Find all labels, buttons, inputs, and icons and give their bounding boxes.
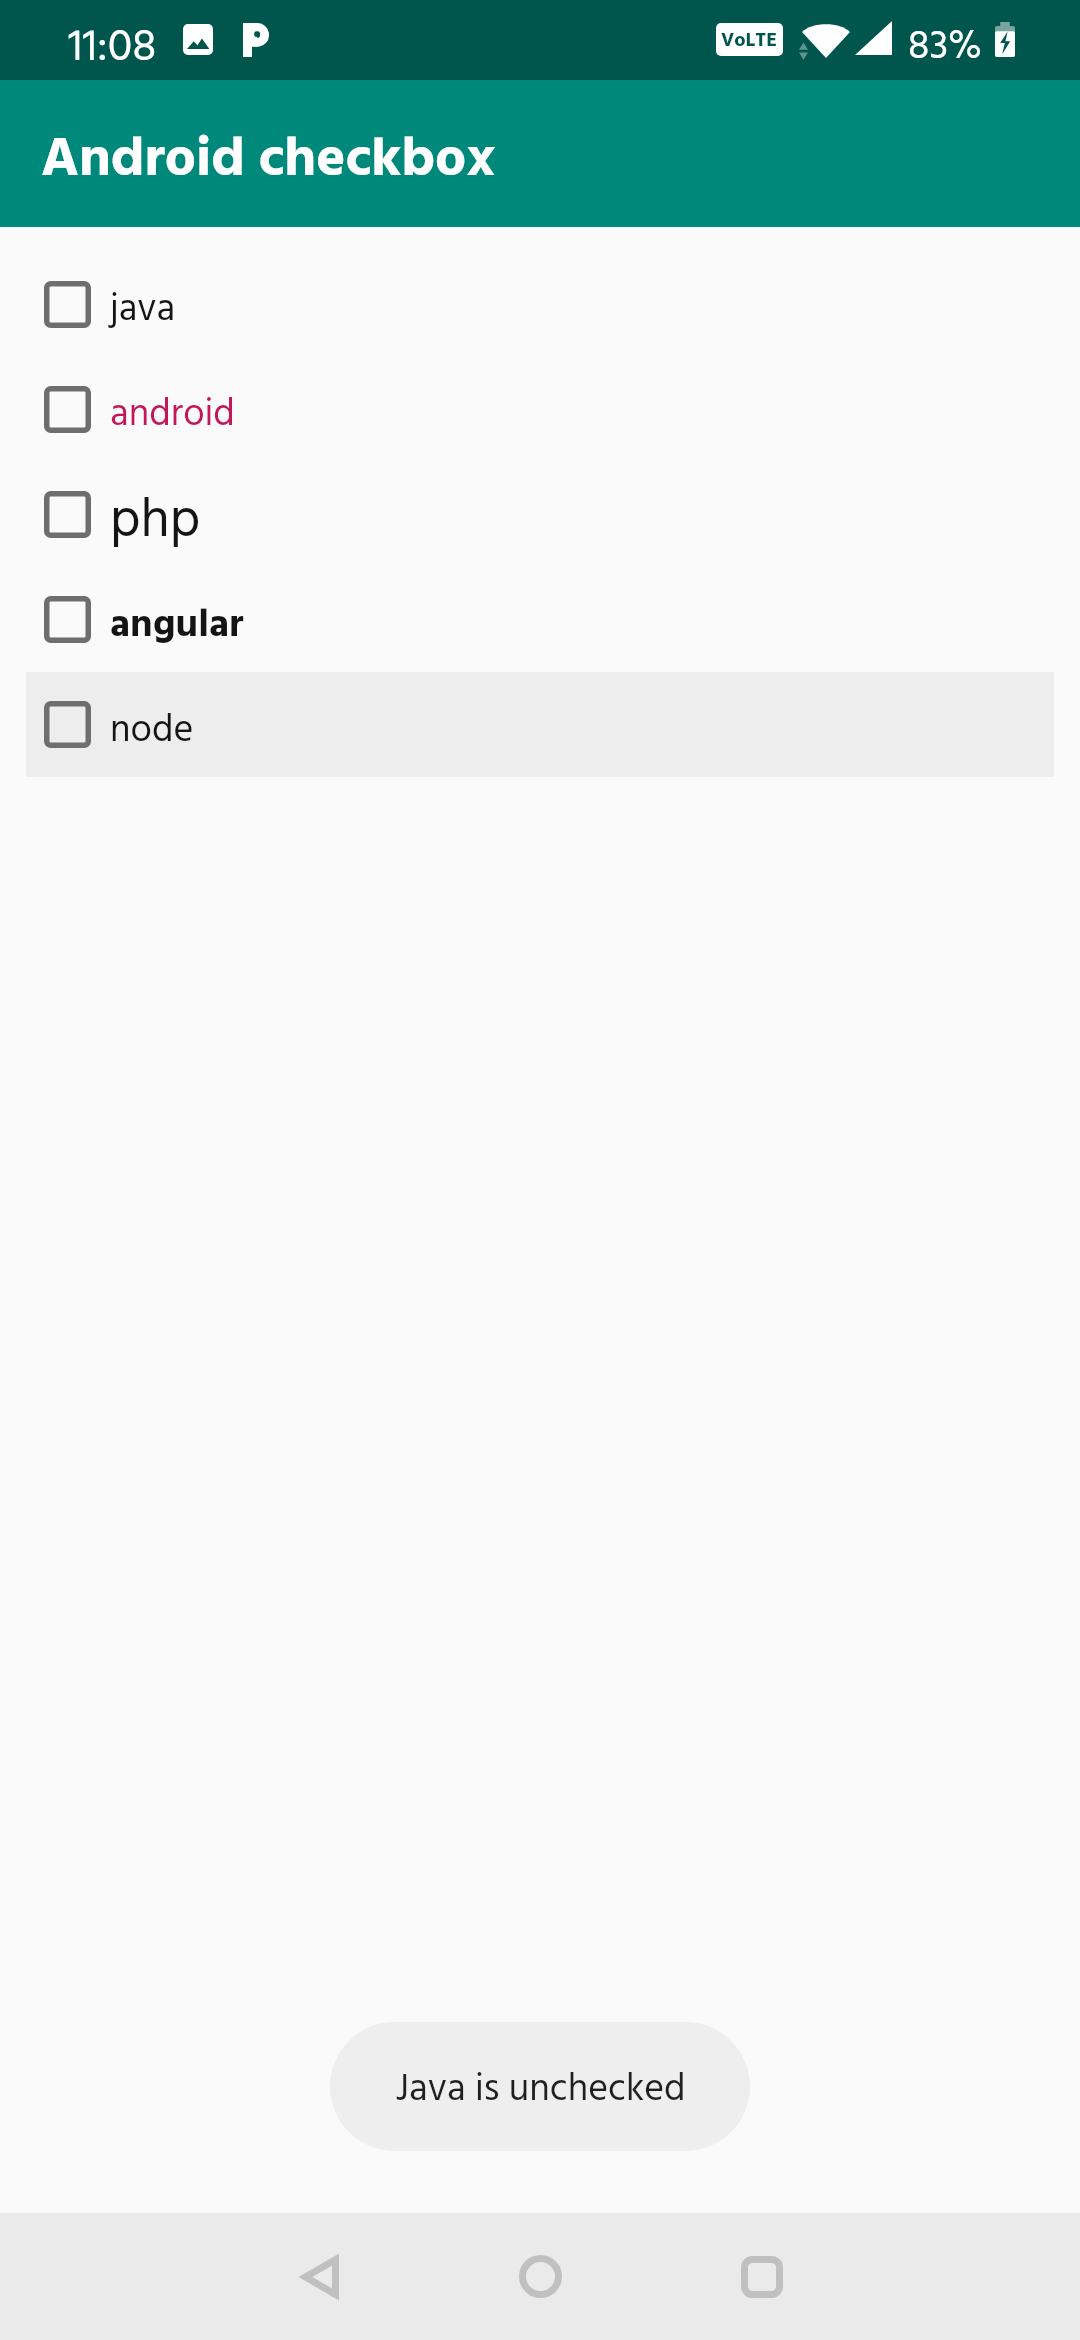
- button[interactable]: android: [26, 357, 1054, 462]
- staticText: java: [110, 280, 176, 341]
- button[interactable]: php: [26, 462, 1054, 567]
- staticText: php: [110, 479, 201, 565]
- staticText: android: [110, 385, 235, 446]
- button[interactable]: Back: [250, 2213, 390, 2340]
- button[interactable]: Recent apps: [692, 2213, 832, 2340]
- button[interactable]: angular: [26, 567, 1054, 672]
- button[interactable]: java: [26, 252, 1054, 357]
- staticText: Android checkbox: [41, 117, 496, 205]
- staticText: 11:08: [68, 13, 157, 85]
- staticText: node: [110, 701, 194, 762]
- button[interactable]: node: [26, 672, 1054, 777]
- staticText: Java is unchecked: [395, 2060, 686, 2121]
- staticText: 83%: [908, 16, 982, 80]
- button[interactable]: Home: [470, 2213, 610, 2340]
- staticText: VoLTE: [721, 25, 778, 56]
- staticText: angular: [110, 595, 244, 657]
